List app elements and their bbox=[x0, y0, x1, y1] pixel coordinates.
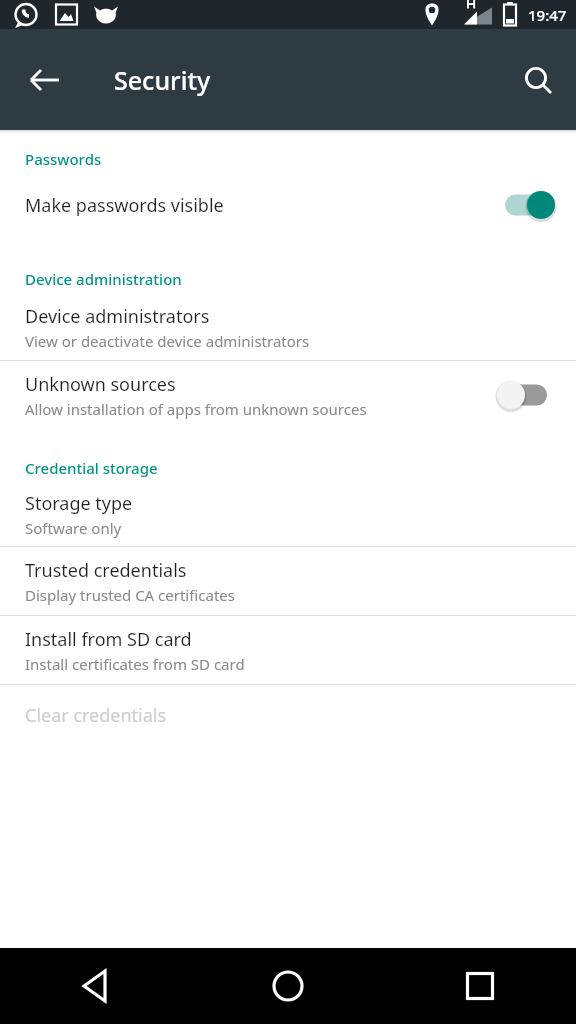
button[interactable]: Clear credentials bbox=[0, 685, 576, 745]
staticText: Device administrators bbox=[25, 304, 210, 329]
staticText: Credential storage bbox=[25, 458, 158, 478]
button[interactable]: Device administrators bbox=[0, 294, 576, 360]
staticText: Storage type bbox=[25, 491, 133, 516]
button[interactable]: Make passwords visible bbox=[0, 174, 576, 236]
button[interactable]: On bbox=[498, 188, 554, 222]
staticText: 19:47 bbox=[528, 5, 567, 25]
staticText: Software only bbox=[25, 518, 122, 538]
staticText: Clear credentials bbox=[25, 703, 167, 728]
button[interactable]: Recent apps bbox=[384, 948, 576, 1024]
staticText: Install certificates from SD card bbox=[25, 654, 245, 674]
button[interactable]: Home bbox=[192, 948, 384, 1024]
button[interactable]: Off bbox=[498, 378, 554, 412]
button[interactable]: Unknown sources bbox=[0, 361, 576, 429]
staticText: View or deactivate device administrators bbox=[25, 331, 310, 351]
staticText: Unknown sources bbox=[25, 372, 176, 397]
staticText: Make passwords visible bbox=[25, 193, 224, 218]
staticText: Security bbox=[114, 63, 211, 97]
button[interactable]: Back bbox=[0, 948, 192, 1024]
button[interactable]: Install from SD card bbox=[0, 616, 576, 684]
staticText: Device administration bbox=[25, 269, 182, 289]
staticText: Passwords bbox=[25, 149, 102, 169]
staticText: Trusted credentials bbox=[25, 558, 187, 583]
staticText: Display trusted CA certificates bbox=[25, 585, 235, 605]
staticText: Install from SD card bbox=[25, 627, 192, 652]
button[interactable]: Back bbox=[20, 55, 70, 105]
button[interactable]: Storage type bbox=[0, 483, 576, 546]
button[interactable]: Search bbox=[514, 56, 562, 104]
button[interactable]: Trusted credentials bbox=[0, 547, 576, 615]
staticText: Allow installation of apps from unknown … bbox=[25, 399, 367, 419]
